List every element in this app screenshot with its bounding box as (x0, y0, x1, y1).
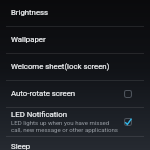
button[interactable]: Welcome sheet(lock screen) (0, 54, 150, 80)
button[interactable]: Auto-rotate screen (0, 81, 150, 107)
staticText: LED lights up when you have missed call,… (11, 119, 118, 133)
staticText: Brightness (11, 8, 49, 17)
button[interactable]: LED Notification (0, 108, 150, 136)
button[interactable]: Auto-rotate screen checkbox (124, 84, 144, 104)
button[interactable]: Wallpaper (0, 27, 150, 53)
button[interactable]: Brightness (0, 0, 150, 26)
button[interactable]: LED Notification checkbox (124, 112, 144, 132)
staticText: Auto-rotate screen (11, 89, 76, 98)
staticText: Welcome sheet(lock screen) (11, 62, 110, 71)
staticText: LED Notification (11, 110, 67, 119)
button[interactable]: Sleep (0, 137, 150, 150)
staticText: Sleep (11, 142, 31, 150)
staticText: Wallpaper (11, 35, 46, 44)
